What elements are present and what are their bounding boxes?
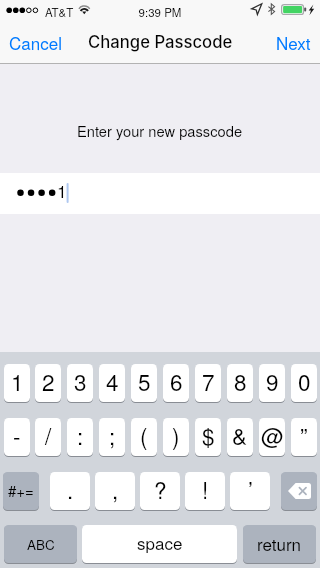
staticText: ; — [109, 419, 116, 451]
staticText: : — [77, 419, 84, 451]
button[interactable]: 5 — [131, 364, 157, 402]
button[interactable]: Delete — [281, 472, 317, 510]
button[interactable]: ? — [140, 472, 180, 510]
staticText: 4 — [106, 365, 119, 397]
staticText: #+= — [8, 480, 34, 501]
staticText: Enter your new passcode — [77, 120, 243, 141]
button[interactable]: 0 — [291, 364, 317, 402]
button[interactable]: 9 — [259, 364, 285, 402]
button[interactable]: 1 — [4, 364, 30, 402]
button[interactable]: ) — [163, 418, 189, 456]
staticText: return — [257, 531, 302, 555]
button[interactable]: @ — [259, 418, 285, 456]
button[interactable]: ABC — [4, 525, 77, 563]
button[interactable]: ” — [291, 418, 317, 456]
staticText: 1 — [11, 365, 24, 397]
staticText: space — [137, 530, 183, 554]
button[interactable]: - — [4, 418, 30, 456]
button[interactable]: Cancel — [0, 22, 70, 62]
button[interactable]: 6 — [163, 364, 189, 402]
button[interactable]: : — [67, 418, 93, 456]
staticText: 7 — [202, 365, 215, 397]
staticText: 5 — [138, 365, 151, 397]
button[interactable]: & — [227, 418, 253, 456]
button[interactable]: 7 — [195, 364, 221, 402]
button[interactable]: ; — [99, 418, 125, 456]
staticText: 1 — [57, 178, 67, 203]
button[interactable]: . — [50, 472, 90, 510]
staticText: 8 — [234, 365, 247, 397]
button[interactable]: Next — [268, 22, 320, 62]
button[interactable]: 4 — [99, 364, 125, 402]
button[interactable]: 3 — [67, 364, 93, 402]
staticText: 2 — [42, 365, 55, 397]
staticText: 3 — [74, 365, 87, 397]
staticText: - — [13, 419, 21, 451]
staticText: & — [232, 419, 248, 451]
button[interactable]: 8 — [227, 364, 253, 402]
staticText: ’ — [248, 473, 253, 505]
staticText: ( — [140, 419, 148, 451]
button[interactable]: space — [82, 525, 237, 563]
staticText: 0 — [298, 365, 311, 397]
staticText: 9 — [266, 365, 279, 397]
staticText: ! — [202, 473, 209, 505]
staticText: AT&T — [45, 4, 74, 20]
staticText: $ — [202, 419, 215, 451]
button[interactable]: , — [95, 472, 135, 510]
staticText: @ — [261, 419, 284, 451]
button[interactable]: 2 — [35, 364, 61, 402]
button[interactable]: return — [243, 525, 316, 563]
button[interactable]: ’ — [230, 472, 270, 510]
staticText: Change Passcode — [88, 32, 233, 52]
staticText: Cancel — [9, 30, 62, 54]
button[interactable]: / — [35, 418, 61, 456]
staticText: 6 — [170, 365, 183, 397]
staticText: 9:39 PM — [0, 4, 320, 20]
staticText: / — [45, 419, 52, 451]
button[interactable]: ! — [185, 472, 225, 510]
staticText: , — [112, 473, 119, 505]
staticText: ” — [300, 419, 308, 451]
button[interactable]: $ — [195, 418, 221, 456]
staticText: . — [67, 473, 74, 505]
staticText: ABC — [27, 535, 55, 554]
staticText: ? — [154, 473, 167, 505]
button[interactable]: #+= — [3, 472, 39, 510]
staticText: ) — [172, 419, 180, 451]
staticText: Next — [276, 30, 311, 54]
button[interactable]: ( — [131, 418, 157, 456]
